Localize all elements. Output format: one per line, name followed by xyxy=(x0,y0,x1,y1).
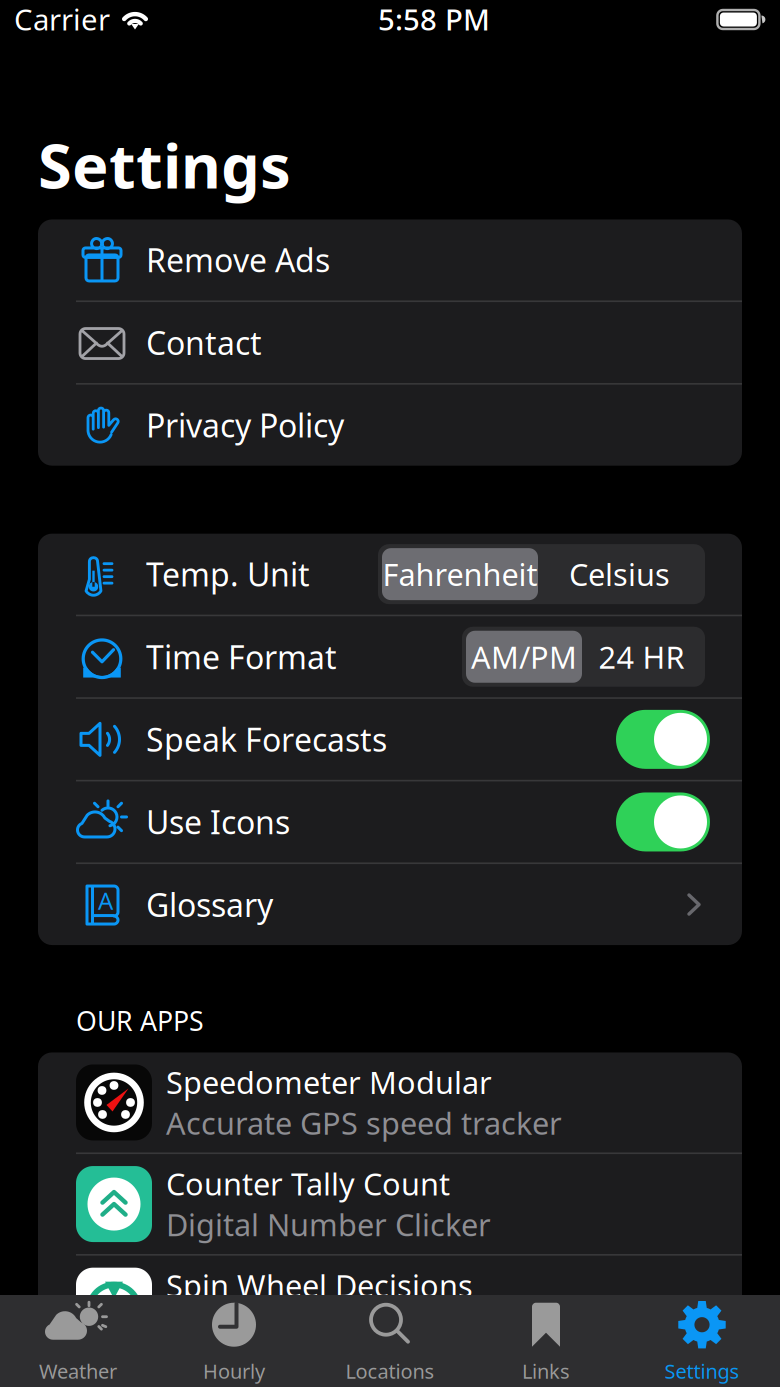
staticText: Spin Wheel Decisions xyxy=(166,1265,473,1306)
button[interactable]: A xyxy=(38,864,742,945)
button[interactable]: Speedometer Modular xyxy=(38,1052,742,1152)
button[interactable]: Time Format xyxy=(38,616,742,697)
button[interactable]: Speak Forecasts xyxy=(38,699,742,780)
staticText: Fahrenheit xyxy=(382,554,537,594)
button[interactable]: Contact xyxy=(38,302,742,383)
staticText: Temp. Unit xyxy=(146,553,310,595)
staticText: Use Icons xyxy=(146,801,290,843)
button[interactable]: AM/PM xyxy=(466,631,582,683)
staticText: Privacy Policy xyxy=(146,404,344,446)
staticText: AM/PM xyxy=(471,636,577,677)
button[interactable]: Links xyxy=(468,1288,624,1387)
button[interactable]: Hourly xyxy=(156,1288,312,1387)
staticText: Carrier xyxy=(14,0,110,38)
staticText: 24 HR xyxy=(598,636,684,677)
staticText: Speak Forecasts xyxy=(146,718,387,761)
staticText: Remove Ads xyxy=(146,239,330,281)
button[interactable]: Temp. Unit xyxy=(38,534,742,615)
button[interactable]: Use Icons xyxy=(38,781,742,862)
button[interactable]: Celsius xyxy=(538,548,701,600)
staticText: Random Picker Wheel xyxy=(166,1306,482,1346)
staticText: Weather xyxy=(39,1358,117,1384)
staticText: Speedometer Modular xyxy=(166,1062,492,1102)
button[interactable]: Spin Wheel Decisions xyxy=(38,1256,742,1356)
button[interactable]: Toggle xyxy=(616,792,710,851)
staticText: Settings xyxy=(664,1358,739,1384)
button[interactable]: Weather xyxy=(0,1288,156,1387)
staticText: Locations xyxy=(345,1358,434,1384)
staticText: Digital Number Clicker xyxy=(166,1204,491,1245)
staticText: Hourly xyxy=(203,1358,265,1384)
button[interactable]: 24 HR xyxy=(582,631,701,683)
button[interactable]: Fahrenheit xyxy=(382,548,538,600)
button[interactable]: Settings xyxy=(624,1288,780,1387)
button[interactable]: Remove Ads xyxy=(38,219,742,300)
staticText: Counter Tally Count xyxy=(166,1163,450,1204)
staticText: Celsius xyxy=(569,554,670,594)
staticText: A xyxy=(98,885,113,916)
staticText: Links xyxy=(522,1358,570,1384)
button[interactable]: Privacy Policy xyxy=(38,385,742,466)
staticText: Settings xyxy=(38,124,291,205)
button[interactable]: Toggle xyxy=(616,710,710,769)
staticText: Glossary xyxy=(146,883,273,926)
button[interactable]: Locations xyxy=(312,1288,468,1387)
staticText: OUR APPS xyxy=(76,1003,204,1038)
staticText: Accurate GPS speed tracker xyxy=(166,1102,562,1143)
staticText: Time Format xyxy=(146,635,337,678)
button[interactable]: Counter Tally Count xyxy=(38,1154,742,1254)
staticText: 5:58 PM xyxy=(378,0,490,38)
staticText: Contact xyxy=(146,321,262,364)
